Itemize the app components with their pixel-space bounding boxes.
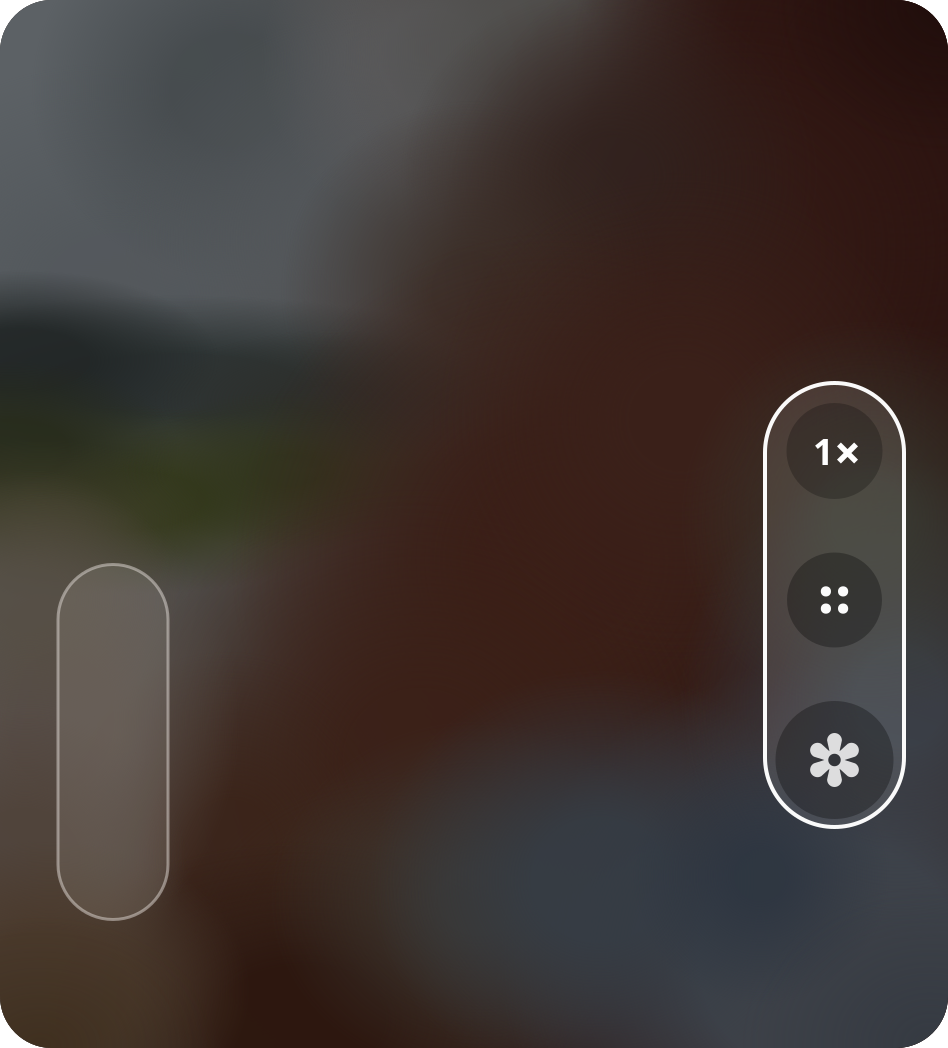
staticText: 1 [813, 427, 834, 475]
button[interactable]: Camera controls [765, 537, 904, 663]
button[interactable]: Exposure slider [58, 564, 168, 919]
button[interactable]: 1 [765, 388, 904, 514]
button[interactable]: Photographic styles [765, 697, 904, 823]
